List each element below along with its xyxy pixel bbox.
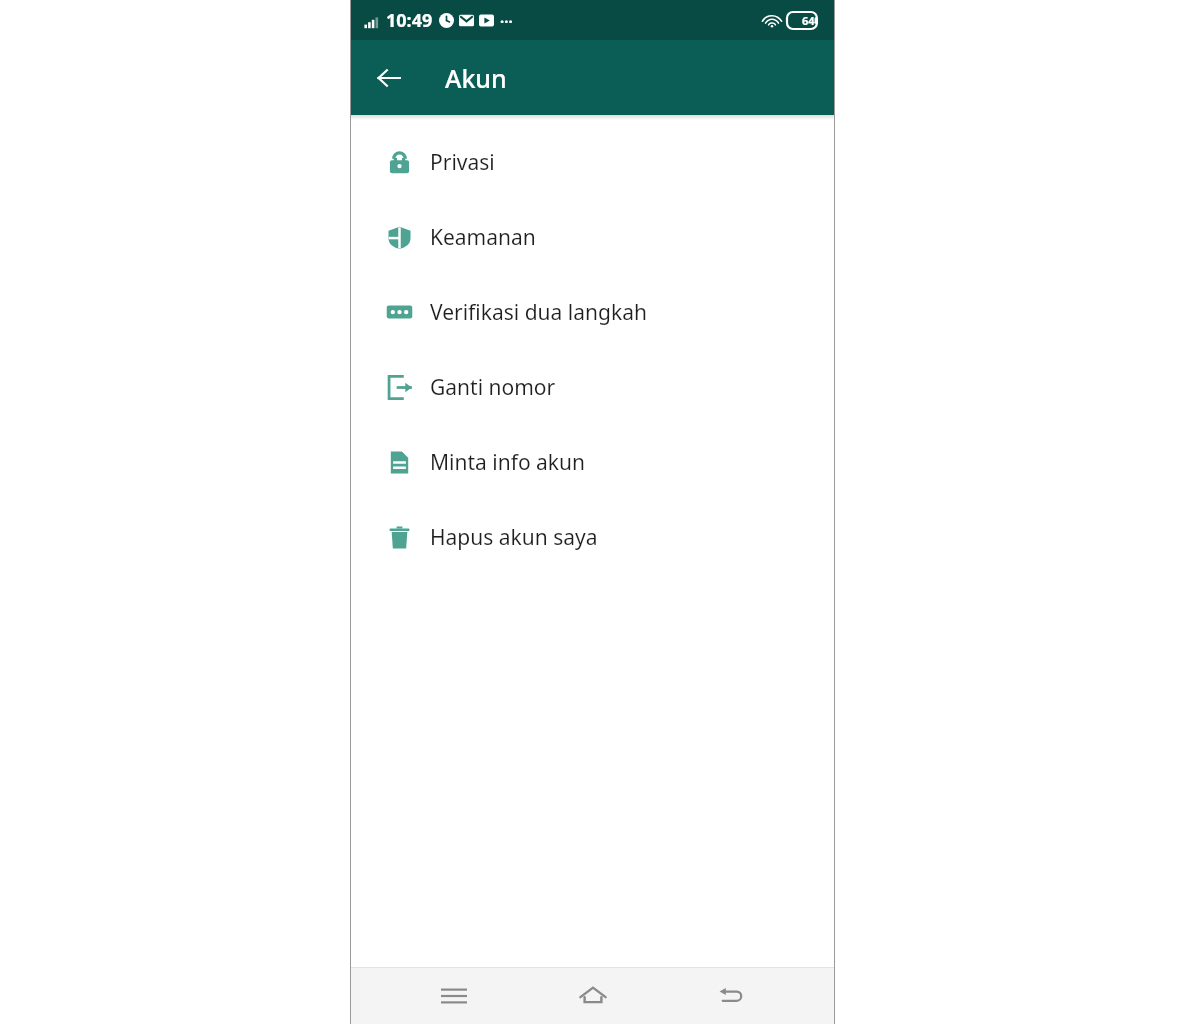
staticText: 64 [802,13,815,28]
staticText: Privasi [430,148,495,177]
staticText: 10:49 [386,8,433,33]
staticText: Verifikasi dua langkah [430,298,647,327]
button[interactable]: Home [558,971,628,1021]
button[interactable]: Keamanan [350,200,835,275]
button[interactable]: Privasi [350,125,835,200]
staticText: Ganti nomor [430,373,556,402]
button[interactable]: Verifikasi dua langkah [350,275,835,350]
staticText: ··· [500,11,513,31]
button[interactable]: Ganti nomor [350,350,835,425]
staticText: Minta info akun [430,448,586,477]
button[interactable]: Back [369,58,409,98]
button[interactable]: Minta info akun [350,425,835,500]
button[interactable]: Back [696,971,766,1021]
button[interactable]: Hapus akun saya [350,500,835,575]
staticText: Hapus akun saya [430,523,598,552]
staticText: Keamanan [430,223,536,252]
button[interactable]: Recent apps [419,971,489,1021]
staticText: Akun [445,61,507,95]
